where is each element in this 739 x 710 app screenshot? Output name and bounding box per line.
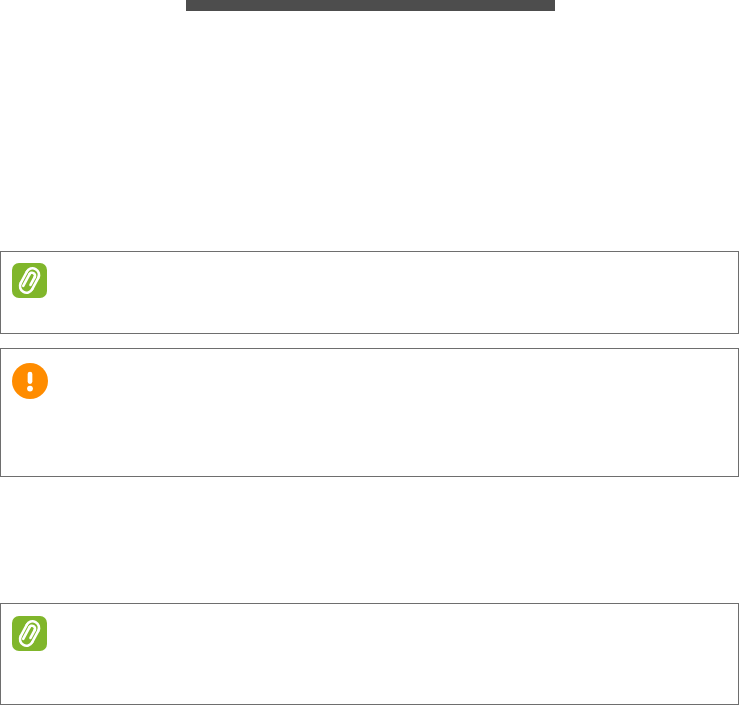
button[interactable]: Note: [0, 603, 739, 705]
button[interactable]: Warning: [0, 348, 739, 477]
button[interactable]: Note: [12, 616, 47, 651]
button[interactable]: Note: [0, 251, 739, 334]
button[interactable]: Warning: [12, 363, 48, 399]
button[interactable]: Note: [12, 263, 47, 298]
